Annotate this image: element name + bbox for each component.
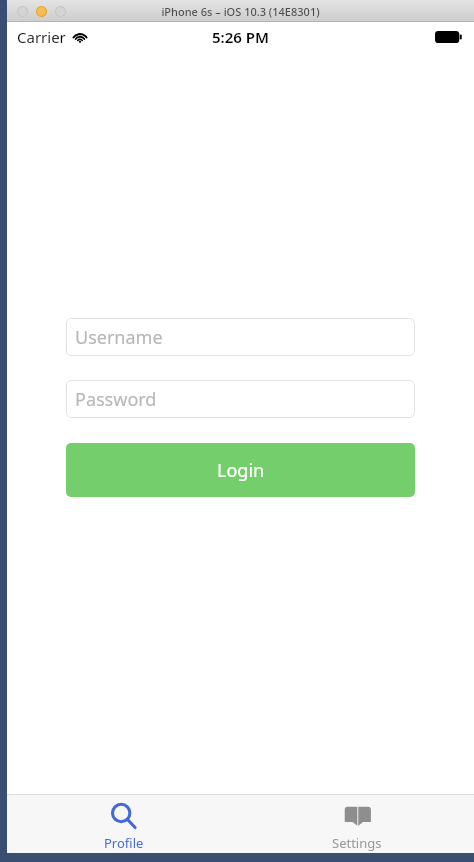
button[interactable]: Settings [240, 795, 474, 853]
button[interactable]: Login [66, 443, 415, 497]
button[interactable] [55, 6, 66, 17]
staticText: Settings [332, 834, 382, 852]
staticText: iPhone 6s – iOS 10.3 (14E8301) [161, 4, 320, 19]
button[interactable] [17, 6, 28, 17]
staticText: Login [217, 458, 265, 483]
staticText: Carrier [17, 27, 66, 47]
staticText: 5:26 PM [212, 27, 269, 47]
button[interactable]: Profile [7, 795, 240, 853]
button[interactable]: Username [66, 318, 415, 356]
button[interactable] [36, 6, 47, 17]
staticText: Password [75, 387, 157, 412]
button[interactable]: Password [66, 380, 415, 418]
staticText: Username [75, 325, 163, 350]
staticText: Profile [104, 834, 144, 852]
